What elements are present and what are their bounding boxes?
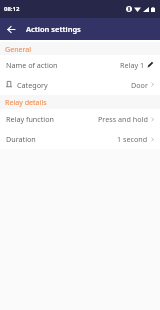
staticText: Name of action — [6, 60, 58, 70]
button[interactable]: Name of action — [0, 55, 160, 74]
button[interactable]: Category — [0, 74, 160, 95]
staticText: Relay 1 — [120, 60, 145, 70]
staticText: Press and hold — [98, 114, 148, 124]
staticText: 08:12 — [4, 5, 20, 13]
staticText: Action settings — [26, 24, 81, 34]
staticText: Relay details — [5, 97, 47, 107]
staticText: General — [5, 44, 32, 54]
staticText: 1 second — [117, 134, 148, 144]
button[interactable]: Back — [0, 18, 21, 40]
staticText: Category — [17, 80, 48, 90]
staticText: Relay function — [6, 114, 54, 124]
button[interactable]: Relay function — [0, 109, 160, 129]
staticText: Duration — [6, 134, 36, 144]
button[interactable]: Duration — [0, 129, 160, 149]
staticText: Door — [131, 80, 148, 90]
